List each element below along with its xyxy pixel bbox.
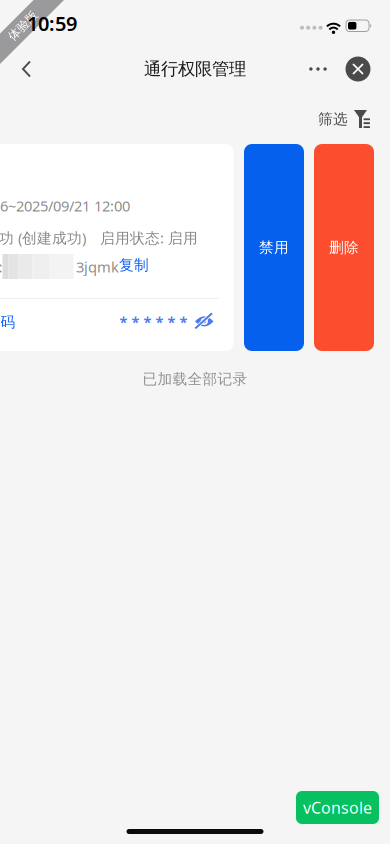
staticText: 通行权限管理 — [144, 58, 246, 80]
staticText: 10:59 — [27, 10, 77, 37]
staticText: 禁用 — [259, 238, 289, 256]
button[interactable]: Close — [343, 54, 373, 84]
staticText: 有效期: 2025/09/16~2025/09/21 12:00 — [0, 196, 130, 215]
button[interactable]: vConsole — [296, 791, 379, 824]
staticText: 3jqmk — [76, 257, 119, 276]
staticText: 已加载全部记录 — [142, 370, 247, 388]
staticText: vConsole — [303, 797, 372, 818]
staticText: 状态: 创建成功 (创建成功) — [0, 228, 86, 247]
button[interactable]: 禁用 — [244, 144, 304, 351]
staticText: 筛选 — [318, 110, 348, 128]
staticText: 删除 — [329, 238, 359, 256]
staticText: 通行码: — [0, 257, 2, 276]
button[interactable]: Show password — [195, 313, 213, 330]
button[interactable]: 删除 — [314, 144, 374, 351]
staticText: 体验版 — [5, 18, 41, 33]
staticText: * * * * * * — [119, 312, 187, 331]
button[interactable]: 筛选 — [308, 104, 370, 134]
staticText: 复制 — [119, 256, 149, 274]
staticText: 启用状态: 启用 — [100, 228, 198, 247]
button[interactable]: 复制 — [119, 256, 149, 274]
button[interactable]: Back — [6, 49, 46, 89]
button[interactable]: More options — [303, 54, 333, 84]
staticText: 动态密码 — [0, 313, 15, 331]
